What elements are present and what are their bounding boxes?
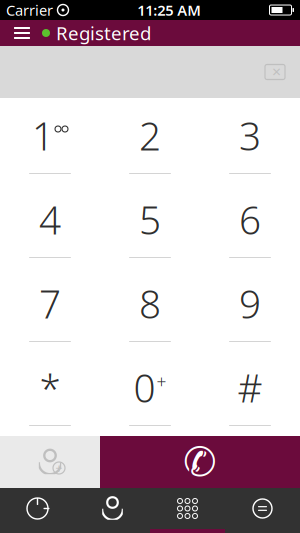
staticText: +: [55, 460, 62, 476]
button[interactable]: 4: [0, 182, 100, 266]
button[interactable]: *: [0, 350, 100, 434]
button[interactable]: 7: [0, 266, 100, 350]
staticText: 1: [32, 110, 54, 161]
button[interactable]: Keypad: [150, 488, 225, 533]
button[interactable]: Recents: [0, 488, 75, 533]
staticText: *: [39, 362, 60, 413]
button[interactable]: #: [200, 350, 300, 434]
staticText: #: [237, 362, 262, 413]
button[interactable]: 8: [100, 266, 200, 350]
staticText: 2: [139, 110, 161, 161]
button[interactable]: 2: [100, 98, 200, 182]
staticText: 0: [133, 362, 155, 413]
button[interactable]: Call: [100, 436, 300, 488]
button[interactable]: 1: [0, 98, 100, 182]
button[interactable]: 9: [200, 266, 300, 350]
staticText: Carrier: [6, 0, 53, 20]
button[interactable]: Contacts: [75, 488, 150, 533]
staticText: 6: [239, 194, 261, 245]
staticText: ✕: [271, 65, 281, 79]
button[interactable]: Delete: [258, 59, 292, 85]
button[interactable]: Messages: [225, 488, 300, 533]
staticText: 4: [39, 194, 61, 245]
staticText: 3: [239, 110, 261, 161]
button[interactable]: 0: [100, 350, 200, 434]
button[interactable]: Add contact: [0, 436, 100, 488]
staticText: 5: [139, 194, 161, 245]
staticText: 8: [139, 278, 161, 329]
staticText: 9: [239, 278, 261, 329]
button[interactable]: Menu: [2, 20, 42, 46]
button[interactable]: 6: [200, 182, 300, 266]
staticText: +: [156, 370, 166, 393]
staticText: 7: [39, 278, 61, 329]
staticText: Registered: [56, 21, 151, 45]
button[interactable]: 3: [200, 98, 300, 182]
staticText: ✆: [183, 439, 217, 485]
staticText: [53, 0, 57, 20]
button[interactable]: 5: [100, 182, 200, 266]
staticText: 11:25 AM: [137, 0, 201, 20]
